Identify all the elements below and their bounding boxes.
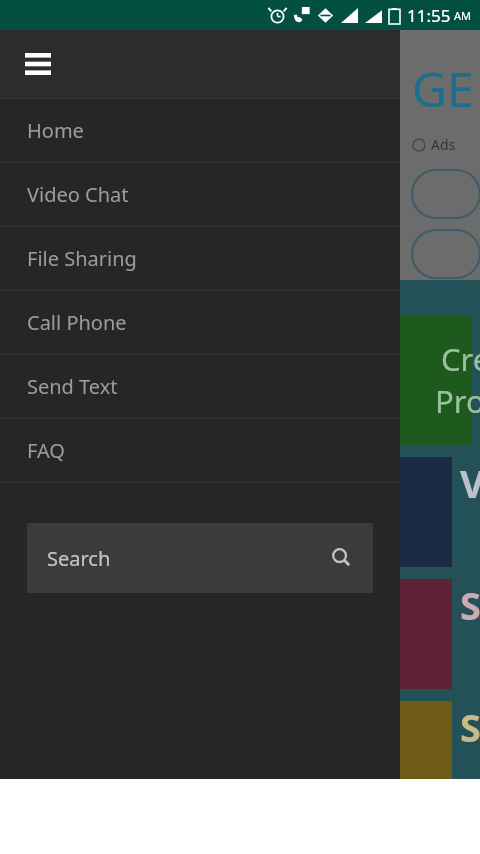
staticText: Cre [441, 338, 480, 380]
staticText: GE [412, 56, 474, 121]
other: Battery [389, 8, 400, 24]
button[interactable]: Send Text [0, 355, 400, 418]
other: Mobile data 4G [293, 7, 310, 24]
button[interactable]: Video Chat [0, 163, 400, 226]
staticText: 11:55 [407, 4, 451, 27]
button[interactable]: Open navigation menu [0, 30, 400, 98]
button[interactable]: Search [27, 523, 373, 593]
button[interactable]: File Sharing [0, 227, 400, 290]
other: Signal strength [341, 8, 358, 23]
staticText: Call Phone [27, 309, 127, 336]
staticText: Prof [435, 380, 480, 422]
button[interactable]: S [28, 579, 452, 689]
button[interactable]: Home [0, 99, 400, 162]
staticText: Send Text [27, 373, 118, 400]
other: Alarm [269, 7, 286, 24]
other: Wi-Fi [317, 7, 334, 24]
staticText: File Sharing [27, 245, 137, 272]
button[interactable]: S [28, 701, 452, 779]
other: Signal strength [365, 8, 382, 23]
staticText: FAQ [27, 437, 65, 464]
staticText: Search [47, 545, 111, 572]
staticText: Video Chat [27, 181, 129, 208]
staticText: AM [454, 8, 472, 23]
staticText: Home [27, 117, 84, 144]
staticText: Ads [431, 135, 456, 154]
button[interactable]: FAQ [0, 419, 400, 482]
button[interactable]: Cre [8, 315, 472, 445]
button[interactable]: V [28, 457, 452, 567]
button[interactable]: Call Phone [0, 291, 400, 354]
